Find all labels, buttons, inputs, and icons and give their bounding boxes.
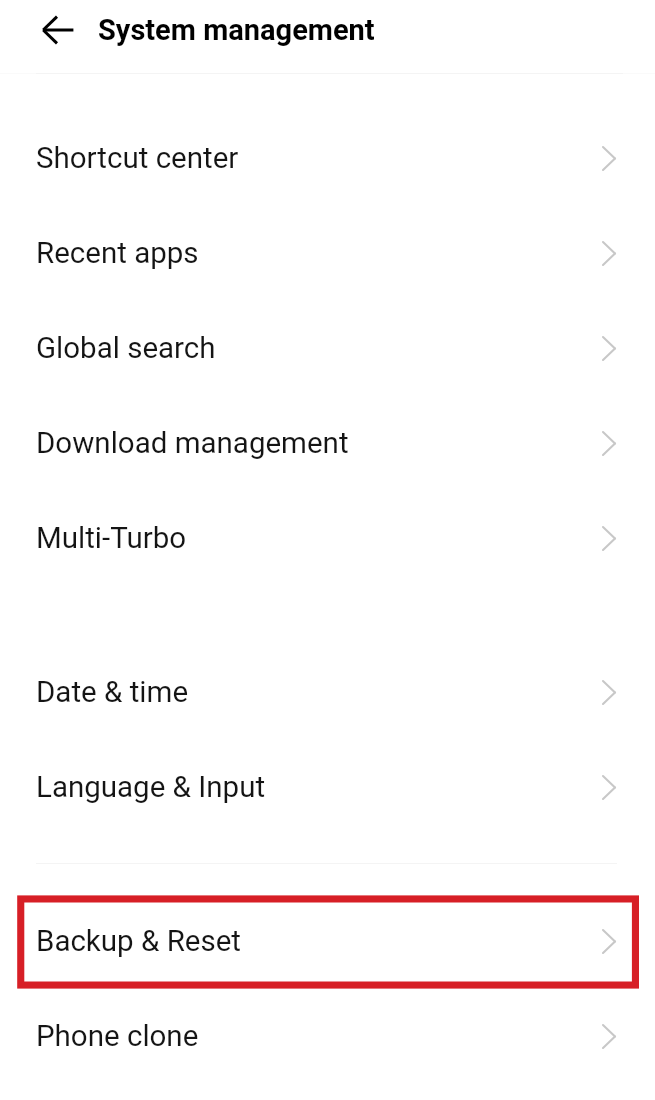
- button[interactable]: Global search: [0, 301, 655, 396]
- staticText: Shortcut center: [36, 141, 239, 176]
- button[interactable]: Multi-Turbo: [0, 491, 655, 586]
- button[interactable]: Phone clone: [0, 989, 655, 1084]
- staticText: Backup & Reset: [36, 924, 241, 959]
- button[interactable]: Language & Input: [0, 740, 655, 835]
- staticText: Recent apps: [36, 236, 199, 271]
- button[interactable]: Recent apps: [0, 206, 655, 301]
- button[interactable]: Shortcut center: [0, 111, 655, 206]
- staticText: System management: [98, 13, 375, 47]
- button[interactable]: Download management: [0, 396, 655, 491]
- staticText: Date & time: [36, 675, 189, 710]
- button[interactable]: Back: [34, 6, 82, 54]
- staticText: Language & Input: [36, 770, 266, 805]
- button[interactable]: Date & time: [0, 645, 655, 740]
- button[interactable]: Backup & Reset: [0, 894, 655, 989]
- staticText: Multi-Turbo: [36, 521, 187, 556]
- staticText: Download management: [36, 426, 349, 461]
- staticText: Global search: [36, 331, 216, 366]
- staticText: Phone clone: [36, 1019, 199, 1054]
